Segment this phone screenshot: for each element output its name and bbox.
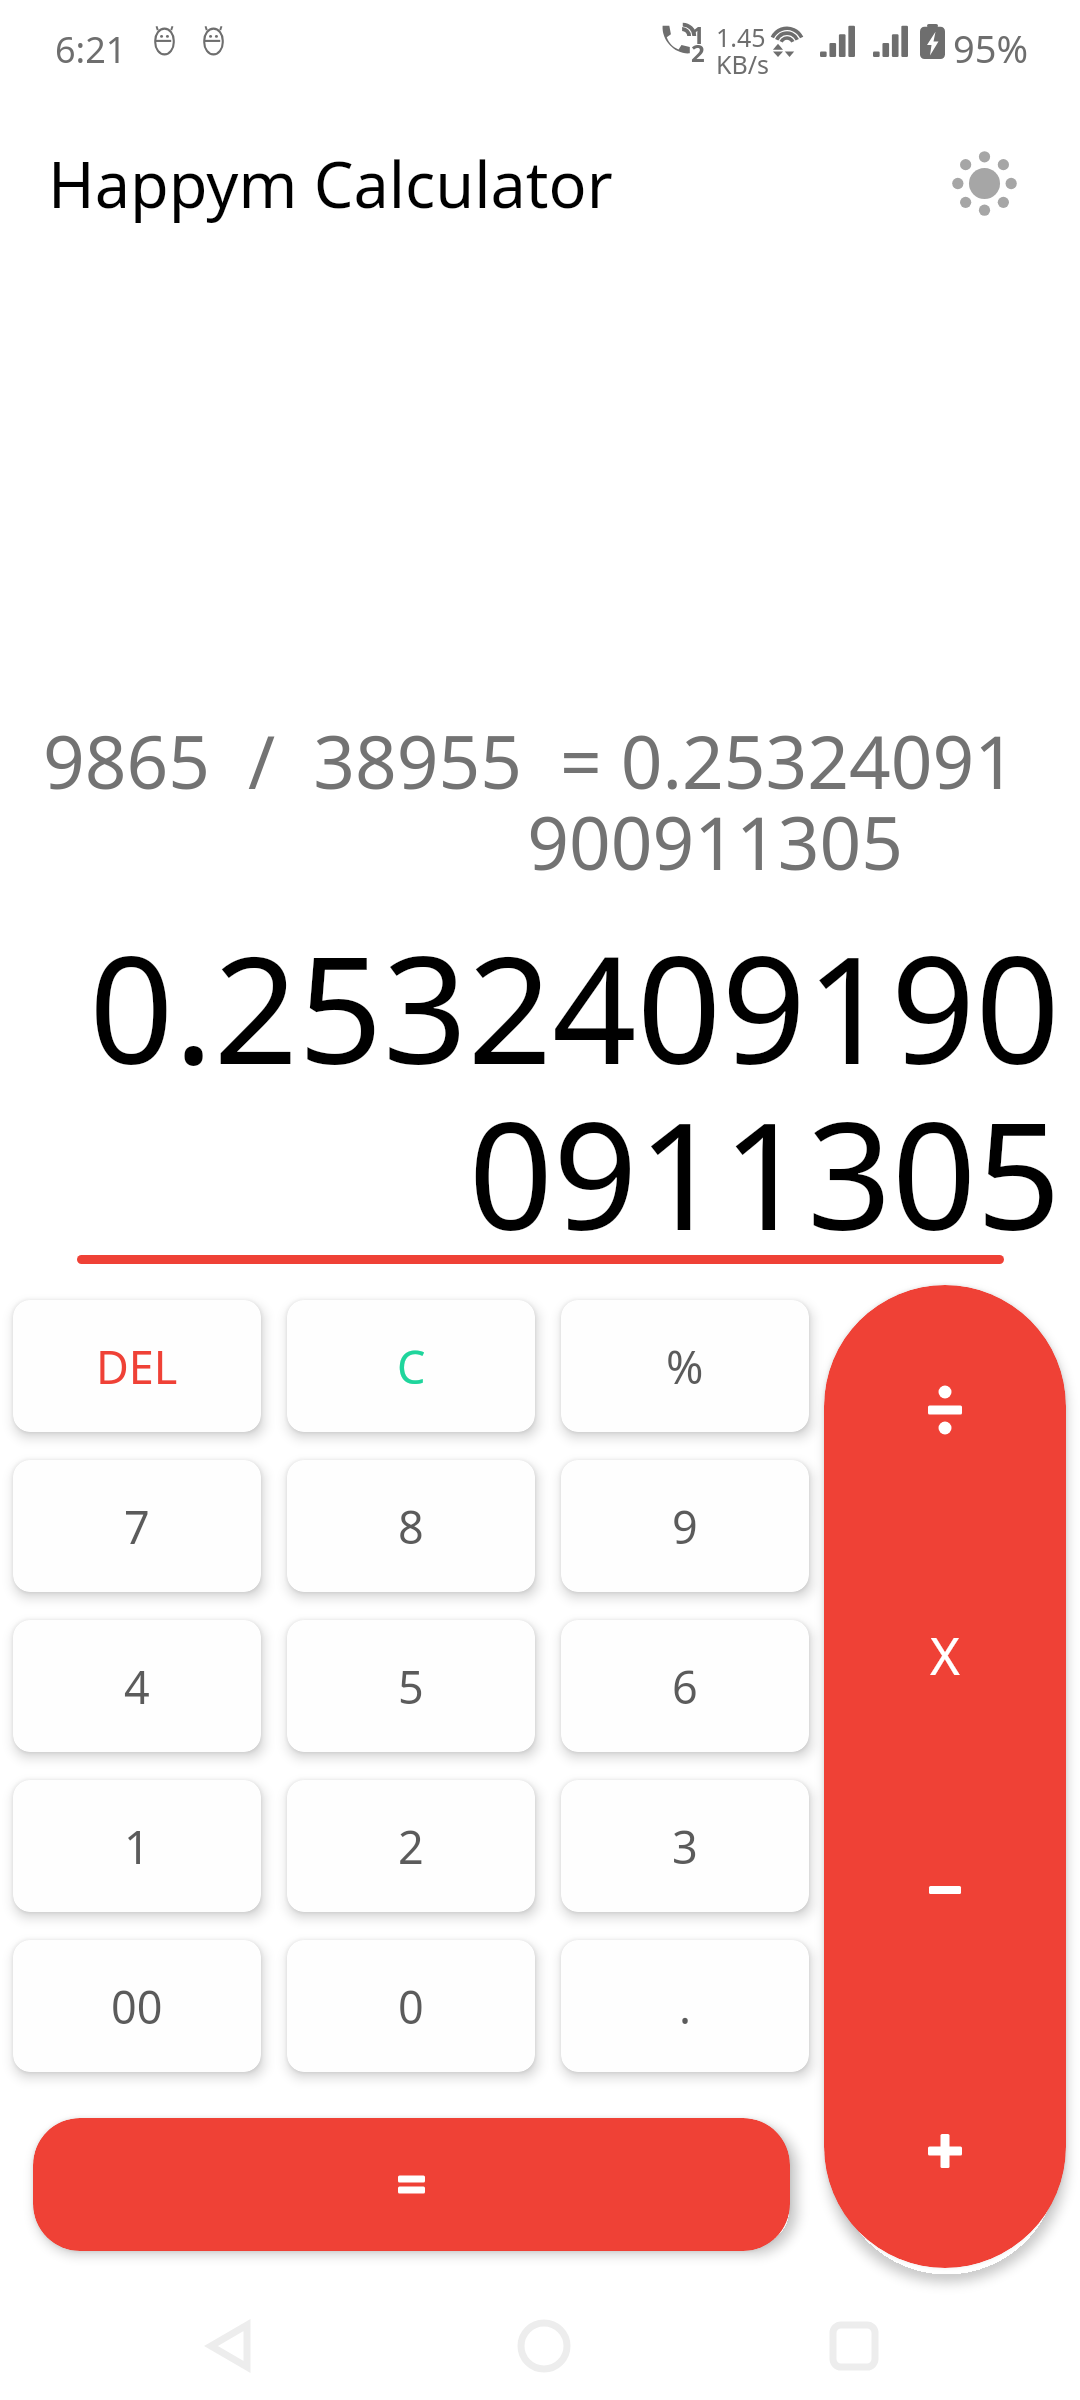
staticText: C — [397, 1336, 426, 1397]
staticText: % — [666, 1336, 704, 1397]
staticText: 1 — [124, 1816, 150, 1877]
button[interactable]: Back — [169, 2286, 289, 2400]
button[interactable]: % — [561, 1300, 809, 1432]
staticText: 6:21 — [55, 25, 127, 74]
button[interactable]: 4 — [13, 1620, 261, 1752]
staticText: 1.45 — [716, 20, 766, 54]
staticText: 2 — [398, 1816, 424, 1877]
staticText: 900911305 — [4, 792, 903, 891]
staticText: 7 — [124, 1496, 150, 1557]
staticText: 1 — [691, 18, 705, 51]
button[interactable]: 6 — [561, 1620, 809, 1752]
button[interactable]: Add — [824, 2091, 1066, 2211]
staticText: . — [679, 1976, 692, 2037]
button[interactable]: Home — [484, 2286, 604, 2400]
button[interactable]: Multiply — [824, 1594, 1066, 1714]
button[interactable]: Divide — [824, 1350, 1066, 1470]
staticText: 0.2532409190 — [7, 906, 1060, 1108]
button[interactable]: 3 — [561, 1780, 809, 1912]
button[interactable]: Recent apps — [794, 2286, 914, 2400]
button[interactable]: 00 — [13, 1940, 261, 2072]
staticText: 6 — [672, 1656, 698, 1717]
button[interactable]: 2 — [287, 1780, 535, 1912]
staticText: 5 — [398, 1656, 424, 1717]
staticText: 0 — [398, 1976, 424, 2037]
staticText: X — [930, 1620, 960, 1689]
button[interactable]: 0 — [287, 1940, 535, 2072]
button[interactable]: 1 — [13, 1780, 261, 1912]
staticText: DEL — [96, 1336, 178, 1397]
staticText: 8 — [398, 1496, 424, 1557]
button[interactable]: C — [287, 1300, 535, 1432]
button[interactable]: 8 — [287, 1460, 535, 1592]
button[interactable]: . — [561, 1940, 809, 2072]
button[interactable]: 7 — [13, 1460, 261, 1592]
staticText: 00 — [111, 1976, 163, 2037]
button[interactable]: 9 — [561, 1460, 809, 1592]
staticText: 9865 / 38955 = 0.25324091 — [17, 711, 1016, 810]
staticText: Happym Calculator — [48, 141, 613, 227]
button[interactable]: Equals — [33, 2118, 790, 2251]
staticText: 0911305 — [8, 1072, 1061, 1274]
staticText: 4 — [124, 1656, 150, 1717]
staticText: 9 — [672, 1496, 698, 1557]
button[interactable]: Toggle brightness theme — [936, 135, 1033, 232]
button[interactable]: Subtract — [824, 1830, 1066, 1950]
button[interactable]: DEL — [13, 1300, 261, 1432]
staticText: 2 — [691, 36, 705, 69]
staticText: 3 — [672, 1816, 698, 1877]
staticText: KB/s — [716, 47, 770, 81]
button[interactable]: 5 — [287, 1620, 535, 1752]
staticText: 95% — [953, 22, 1029, 74]
